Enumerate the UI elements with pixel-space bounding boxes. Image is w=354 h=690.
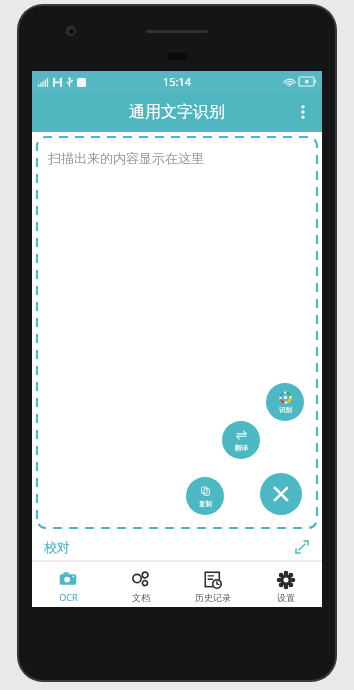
staticText: 扫描出来的内容显示在这里	[48, 150, 204, 166]
staticText: 复制	[199, 500, 212, 508]
button[interactable]: More options	[284, 93, 322, 131]
button[interactable]: Copy	[186, 477, 224, 515]
button[interactable]: 设置	[250, 561, 322, 607]
staticText: 15:14	[163, 74, 192, 89]
button[interactable]: Expand	[292, 537, 312, 557]
staticText: 设置	[277, 592, 295, 603]
staticText: 通用文字识别	[129, 102, 225, 122]
button[interactable]: 校对	[32, 533, 322, 561]
button[interactable]: Close menu	[260, 473, 302, 515]
button[interactable]: 文档	[105, 561, 177, 607]
staticText: 文档	[132, 592, 150, 603]
staticText: 历史记录	[195, 592, 231, 603]
staticText: 校对	[44, 539, 70, 555]
button[interactable]: OCR	[32, 561, 104, 607]
button[interactable]: Translate	[222, 421, 260, 459]
staticText: OCR	[59, 591, 78, 603]
staticText: 识别	[279, 406, 292, 414]
staticText: 翻译	[235, 444, 248, 452]
button[interactable]: 历史记录	[177, 561, 249, 607]
button[interactable]: Recognize	[266, 383, 304, 421]
